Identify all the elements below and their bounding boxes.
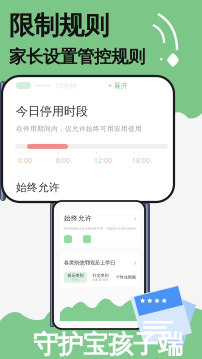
staticText: 限制规则 <box>9 10 109 41</box>
staticText: 18:00 <box>132 156 150 165</box>
staticText: 6:00 <box>56 156 70 165</box>
staticText: › <box>134 213 136 224</box>
staticText: 未配置/关闭 <box>92 278 108 281</box>
staticText: + 展开 <box>108 81 128 90</box>
staticText: 12:00 <box>94 156 112 165</box>
staticText: › <box>134 257 136 268</box>
staticText: 守护宝孩子端 <box>33 329 183 359</box>
staticText: 0:00 <box>18 156 32 165</box>
staticText: 今日停用时段 <box>16 104 88 119</box>
staticText: 娱乐类别 <box>67 273 83 278</box>
staticText: 家长设置管控规则 <box>9 46 145 67</box>
staticText: 始终允许 <box>16 181 60 194</box>
staticText: 在停用期间内，仅允许始终可用应用使用 <box>16 125 142 133</box>
staticText: 15分钟 <box>55 81 77 90</box>
staticText: 个性化限额 <box>116 275 136 280</box>
staticText: 各类别使用情况·上学日 <box>64 259 115 266</box>
staticText: 社交类别 <box>92 273 108 278</box>
staticText: 在停用期间这些应用始终可用，与App已可用设置相同 <box>64 227 136 230</box>
staticText: 始终允许 <box>64 214 92 222</box>
staticText: 50分 <box>72 278 79 281</box>
